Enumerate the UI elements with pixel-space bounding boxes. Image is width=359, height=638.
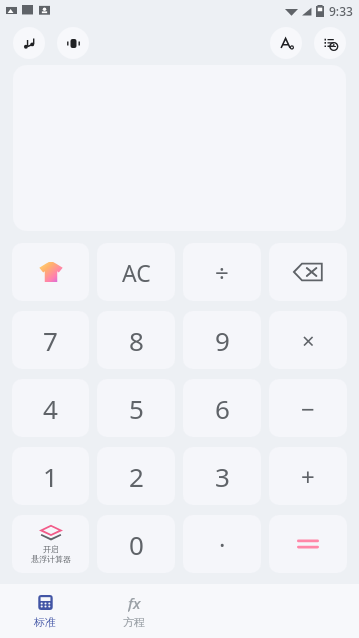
button[interactable]: 8 [97,311,175,369]
button[interactable]: − [269,379,347,437]
button[interactable]: 7 [12,311,89,369]
staticText: 3 [215,459,230,494]
button[interactable]: 1 [12,447,89,505]
button[interactable]: Equals [269,515,347,573]
staticText: 5 [129,391,144,426]
button[interactable]: · [183,515,261,573]
staticText: · [219,528,226,561]
button[interactable]: 9 [183,311,261,369]
staticText: × [302,325,315,355]
staticText: AC [122,257,151,288]
button[interactable]: AC [97,243,175,301]
staticText: 9 [215,323,230,358]
button[interactable]: Backspace [269,243,347,301]
button[interactable]: fx [89,584,179,638]
staticText: + [301,460,315,493]
staticText: 4 [43,391,58,426]
button[interactable]: Floating calculator [12,515,89,573]
staticText: 标准 [34,615,56,629]
staticText: 0 [129,527,144,562]
staticText: 6 [215,391,230,426]
button[interactable]: × [269,311,347,369]
button[interactable]: 3 [183,447,261,505]
button[interactable]: 0 [97,515,175,573]
button[interactable]: + [269,447,347,505]
staticText: 开启 [43,544,59,554]
staticText: 2 [129,459,144,494]
button[interactable]: History [314,27,346,59]
staticText: 8 [129,323,144,358]
staticText: ÷ [215,256,229,289]
staticText: 悬浮计算器 [31,554,71,564]
button[interactable]: 4 [12,379,89,437]
button[interactable]: Font size [270,27,302,59]
button[interactable]: 标准 [0,584,89,638]
staticText: 方程 [123,615,145,629]
button[interactable]: Theme [12,243,89,301]
button[interactable]: 6 [183,379,261,437]
button[interactable]: ÷ [183,243,261,301]
button[interactable]: Vibrate [57,27,89,59]
button[interactable]: 5 [97,379,175,437]
button[interactable]: Sound [13,27,45,59]
staticText: − [301,392,315,425]
staticText: 1 [43,459,58,494]
staticText: 7 [43,323,58,358]
button[interactable]: 2 [97,447,175,505]
staticText: fx [128,593,141,612]
staticText: 9:33 [329,3,353,19]
